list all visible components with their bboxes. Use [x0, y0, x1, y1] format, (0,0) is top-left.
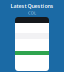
staticText: CDL	[28, 10, 36, 16]
staticText: Latest Questions	[10, 2, 53, 9]
